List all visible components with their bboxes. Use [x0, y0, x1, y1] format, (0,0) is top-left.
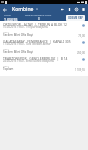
staticText: GALATASARAY - FENERBAHCE | KAPALI 305	[3, 39, 71, 43]
staticText: 75,00	[0, 34, 85, 38]
staticText: Adet: 1	[3, 48, 10, 51]
button[interactable]	[0, 47, 88, 55]
button[interactable]: Info	[73, 6, 80, 13]
button[interactable]: ODEME YAP	[66, 15, 85, 21]
button[interactable]: Note	[66, 6, 73, 13]
button[interactable]	[0, 38, 88, 46]
staticText: 1 434,55	[4, 17, 18, 21]
staticText: Adet: 1	[3, 65, 10, 68]
staticText: 1 109,55	[0, 68, 85, 72]
staticText: 17.04.2016 19:00 - Turk Telekom Arena	[3, 42, 50, 46]
staticText: ODEME YAP	[68, 16, 83, 20]
staticText: Secilen Bilet Ofis Bayi	[3, 33, 34, 37]
button[interactable]	[0, 64, 88, 72]
button[interactable]: Remove	[80, 56, 86, 62]
staticText: ORDUSPOR - ALTAY | TRIBUN A BLOK 12	[3, 22, 67, 26]
staticText: 250,00	[0, 51, 85, 55]
button[interactable]: Back	[0, 5, 9, 14]
button[interactable]	[0, 55, 88, 63]
staticText: Toplam	[3, 67, 14, 71]
staticText: SECILEN KOMBINE SAYISI	[25, 14, 52, 17]
staticText: Secilen Bilet Ofis Bayi	[3, 50, 34, 54]
staticText: 24.04.2016 19:00 - Senol Gunes Stadyumu	[3, 59, 54, 63]
button[interactable]: Menu	[80, 6, 87, 13]
staticText: Kombine	[12, 6, 34, 13]
staticText: 10.04.2016 19:00 - 19 Eylul Stadyumu	[3, 25, 49, 29]
staticText: 3	[38, 17, 40, 21]
button[interactable]: Remove	[80, 22, 86, 28]
staticText: Adet: 1	[3, 31, 10, 34]
button[interactable]	[0, 21, 88, 29]
button[interactable]: Remove	[80, 39, 86, 45]
button[interactable]	[0, 30, 88, 38]
staticText: TRABZONSPOR - GENCLERBIRLIGI | B 14	[3, 56, 68, 60]
button[interactable]: Camera	[59, 6, 66, 13]
staticText: TUTAR	[4, 14, 11, 17]
